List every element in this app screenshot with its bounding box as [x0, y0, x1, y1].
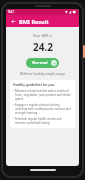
staticText: Maintain a balanced diet with a variety … [15, 89, 72, 101]
button[interactable]: Back [9, 17, 17, 25]
button[interactable]: Normal [26, 58, 59, 68]
staticText: Normal [32, 60, 48, 66]
staticText: 24.2 [33, 40, 53, 54]
staticText: 9:41 [8, 10, 14, 14]
staticText: • [13, 89, 15, 93]
staticText: Healthy guidelines for you: [13, 83, 55, 87]
staticText: Schedule regular health checks and monit… [15, 117, 72, 125]
staticText: Your BMI is [33, 33, 53, 38]
button[interactable]: Healthy guidelines for you: [10, 80, 75, 128]
staticText: Engage in regular physical activity, inc… [15, 103, 72, 115]
staticText: Within a healthy weight range [20, 72, 65, 76]
staticText: • [13, 103, 15, 107]
staticText: • [13, 117, 15, 121]
staticText: BMI Result [19, 18, 49, 25]
